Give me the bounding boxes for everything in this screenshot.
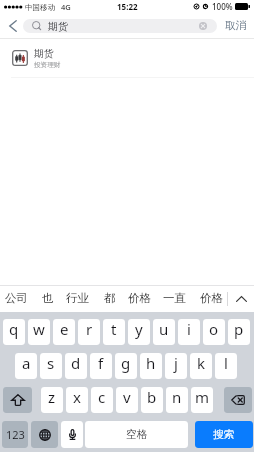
staticText: k [197, 353, 206, 373]
staticText: d [71, 353, 81, 373]
staticText: 期货 [34, 48, 54, 60]
staticText: 公司 [5, 291, 28, 305]
button[interactable]: b [141, 387, 163, 413]
staticText: i [187, 319, 191, 339]
button[interactable]: z [41, 387, 63, 413]
staticText: 中国移动 [25, 3, 55, 12]
button[interactable]: y [128, 319, 150, 345]
staticText: c [98, 387, 106, 407]
staticText: b [147, 387, 157, 407]
staticText: a [22, 353, 31, 373]
button[interactable]: t [103, 319, 125, 345]
staticText: s [47, 353, 55, 373]
staticText: 一直 [163, 291, 186, 305]
button[interactable]: s [40, 353, 62, 379]
staticText: w [33, 319, 45, 339]
button[interactable]: 也 [42, 285, 54, 311]
staticText: y [135, 319, 143, 339]
staticText: 123 [6, 427, 25, 442]
staticText: 价格 [128, 291, 151, 305]
button[interactable]: 期货 [0, 39, 254, 77]
button[interactable]: Backspace [224, 387, 252, 413]
staticText: 空格 [126, 428, 148, 442]
button[interactable]: u [153, 319, 175, 345]
button[interactable]: n [166, 387, 188, 413]
staticText: 搜索 [213, 428, 235, 442]
staticText: 价格 [200, 291, 223, 305]
staticText: 投资理财 [34, 61, 61, 69]
button[interactable]: Back [0, 15, 23, 37]
button[interactable]: Collapse candidates [228, 286, 254, 312]
button[interactable]: v [116, 387, 138, 413]
button[interactable]: 搜索 [195, 421, 253, 448]
button[interactable]: Dictation [61, 421, 83, 448]
button[interactable]: 价格 [200, 285, 223, 311]
staticText: h [146, 353, 156, 373]
button[interactable]: 123 [2, 421, 28, 448]
staticText: 期货 [48, 20, 68, 33]
button[interactable]: Shift [3, 387, 32, 413]
staticText: 15:22 [117, 1, 138, 12]
button[interactable]: d [65, 353, 87, 379]
staticText: 取消 [225, 19, 247, 33]
staticText: o [209, 319, 219, 339]
button[interactable]: h [140, 353, 162, 379]
staticText: t [111, 319, 117, 339]
staticText: f [98, 353, 104, 373]
staticText: 也 [42, 291, 54, 305]
button[interactable]: Change keyboard [31, 421, 58, 448]
staticText: j [174, 353, 178, 373]
staticText: 4G [61, 2, 71, 12]
staticText: 行业 [66, 291, 89, 305]
button[interactable]: o [203, 319, 225, 345]
button[interactable]: q [3, 319, 25, 345]
button[interactable]: Clear text [199, 22, 207, 30]
staticText: g [121, 353, 131, 373]
staticText: n [172, 387, 182, 407]
button[interactable]: k [190, 353, 212, 379]
staticText: v [123, 387, 131, 407]
button[interactable]: 空格 [85, 421, 188, 448]
button[interactable]: j [165, 353, 187, 379]
button[interactable]: i [178, 319, 200, 345]
staticText: u [159, 319, 169, 339]
button[interactable]: p [228, 319, 250, 345]
staticText: p [234, 319, 244, 339]
button[interactable]: m [191, 387, 213, 413]
button[interactable]: 公司 [5, 285, 28, 311]
staticText: 100% [212, 1, 233, 12]
staticText: x [73, 387, 81, 407]
button[interactable]: x [66, 387, 88, 413]
staticText: m [195, 387, 210, 407]
button[interactable]: 取消 [217, 15, 254, 37]
button[interactable]: 都 [104, 285, 116, 311]
button[interactable]: r [78, 319, 100, 345]
button[interactable]: e [53, 319, 75, 345]
staticText: r [86, 319, 93, 339]
button[interactable]: w [28, 319, 50, 345]
staticText: l [224, 353, 228, 373]
staticText: e [60, 319, 69, 339]
staticText: q [9, 319, 19, 339]
staticText: z [48, 387, 56, 407]
button[interactable]: f [90, 353, 112, 379]
staticText: 都 [104, 291, 116, 305]
button[interactable]: l [215, 353, 237, 379]
button[interactable]: c [91, 387, 113, 413]
button[interactable]: 价格 [128, 285, 151, 311]
button[interactable]: 期货 [23, 19, 217, 33]
button[interactable]: g [115, 353, 137, 379]
button[interactable]: 行业 [66, 285, 89, 311]
button[interactable]: 一直 [163, 285, 186, 311]
button[interactable]: a [15, 353, 37, 379]
